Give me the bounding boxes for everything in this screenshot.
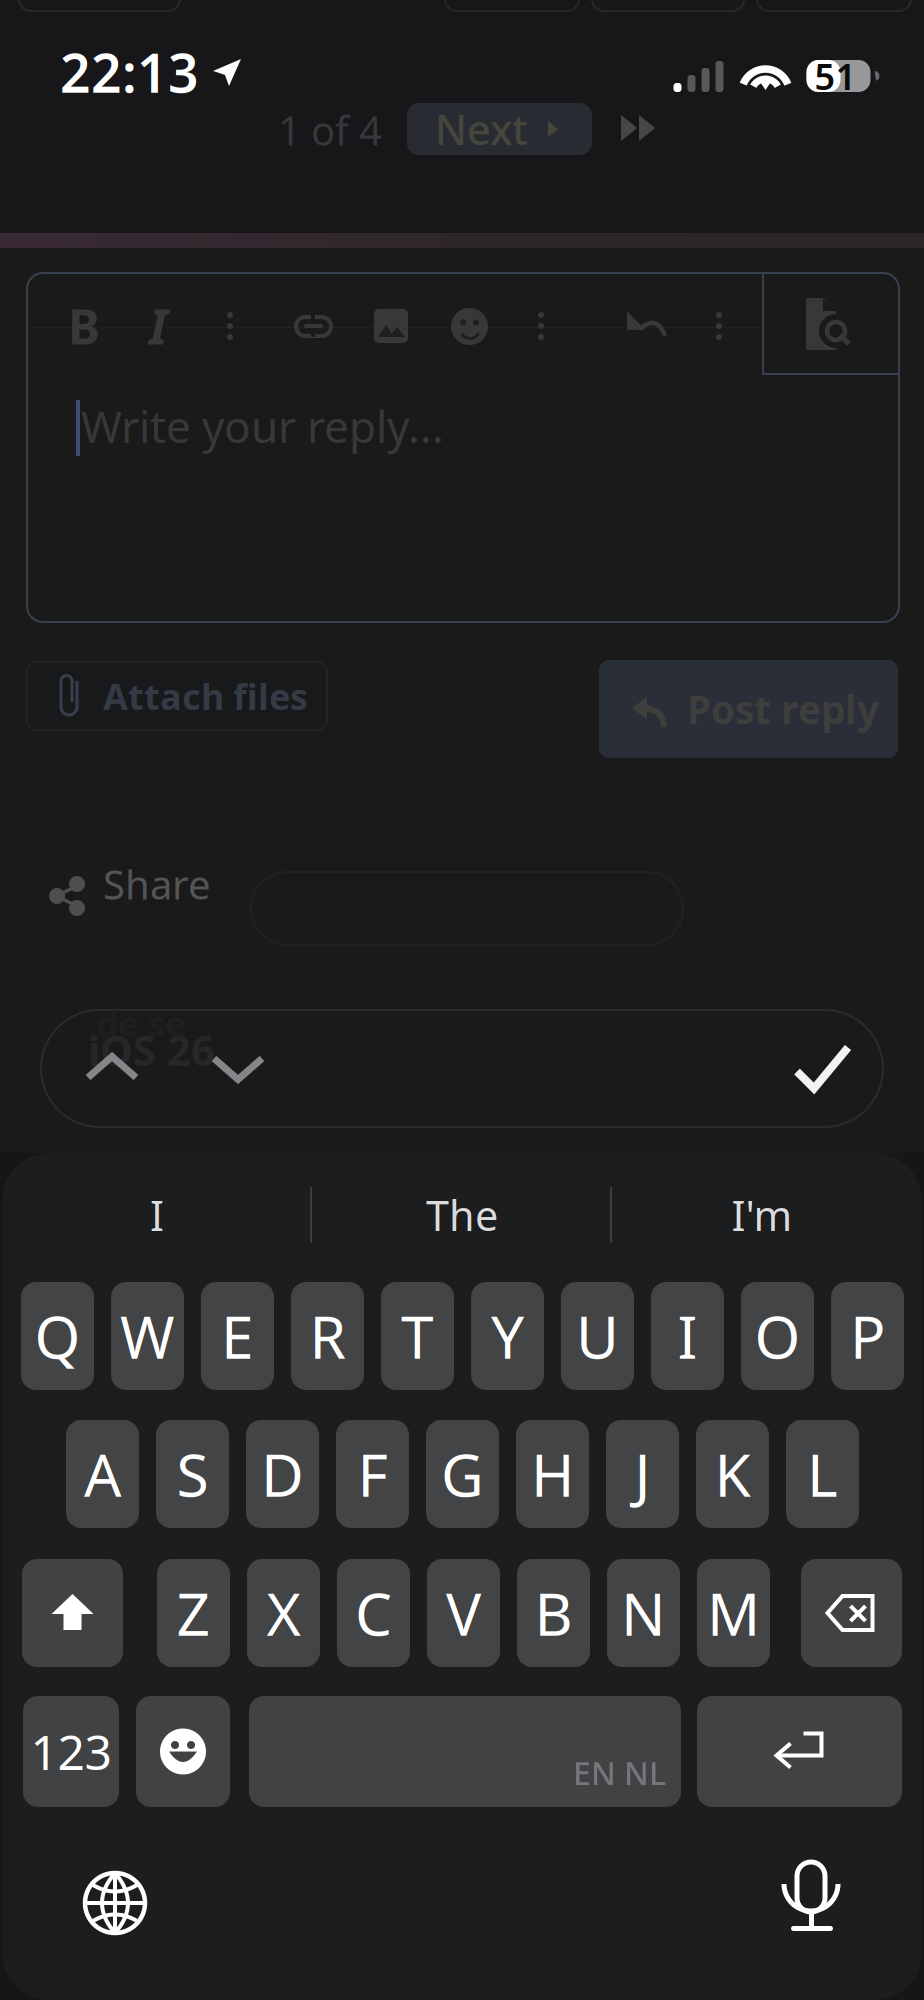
staticText: C xyxy=(355,1574,392,1652)
staticText: B xyxy=(68,294,100,358)
staticText: L xyxy=(807,1435,838,1513)
button[interactable]: R xyxy=(291,1282,364,1390)
button[interactable]: Next field xyxy=(183,1011,293,1126)
button[interactable]: Z xyxy=(157,1559,230,1667)
button[interactable]: Previous field xyxy=(57,1011,167,1126)
staticText: Attach files xyxy=(103,672,308,720)
button[interactable]: space xyxy=(249,1696,681,1807)
staticText: Next xyxy=(435,102,528,156)
button[interactable]: P xyxy=(831,1282,904,1390)
button[interactable]: E xyxy=(201,1282,274,1390)
staticText: V xyxy=(446,1574,481,1652)
button[interactable]: Return xyxy=(697,1696,902,1807)
button[interactable]: Dictation xyxy=(779,1862,843,1936)
button[interactable]: V xyxy=(427,1559,500,1667)
button[interactable]: Done xyxy=(768,1011,878,1126)
staticText: J xyxy=(634,1435,650,1513)
staticText: G xyxy=(441,1435,484,1513)
staticText: Q xyxy=(34,1297,80,1375)
staticText: EN NL xyxy=(573,1751,666,1794)
staticText: 1 of 4 xyxy=(278,103,382,156)
button[interactable]: Shift xyxy=(22,1559,123,1667)
button[interactable]: Delete xyxy=(801,1559,902,1667)
staticText: D xyxy=(261,1435,304,1513)
button[interactable]: Share xyxy=(47,856,267,912)
staticText: K xyxy=(714,1435,750,1513)
staticText: 51 xyxy=(814,52,856,100)
button[interactable]: X xyxy=(247,1559,320,1667)
staticText: The xyxy=(426,1188,498,1242)
button[interactable]: Emoji xyxy=(136,1696,230,1807)
button[interactable]: S xyxy=(156,1420,229,1528)
staticText: S xyxy=(176,1435,208,1513)
staticText: 22:13 xyxy=(60,37,199,107)
button[interactable]: Q xyxy=(21,1282,94,1390)
staticText: I'm xyxy=(731,1188,792,1242)
staticText: W xyxy=(120,1297,175,1375)
button[interactable]: Attach files xyxy=(27,662,327,730)
button[interactable]: Next keyboard xyxy=(77,1865,149,1937)
button[interactable]: G xyxy=(426,1420,499,1528)
staticText: Write your reply... xyxy=(81,397,444,455)
button[interactable]: O xyxy=(741,1282,814,1390)
staticText: iOS 26 xyxy=(88,1023,215,1077)
button[interactable]: 123 xyxy=(23,1696,119,1807)
button[interactable]: L xyxy=(786,1420,859,1528)
staticText: Y xyxy=(491,1297,524,1375)
button[interactable]: W xyxy=(111,1282,184,1390)
staticText: F xyxy=(357,1435,387,1513)
staticText: T xyxy=(401,1297,434,1375)
button[interactable]: K xyxy=(696,1420,769,1528)
staticText: R xyxy=(309,1297,345,1375)
staticText: I xyxy=(150,1188,164,1242)
staticText: A xyxy=(84,1435,121,1513)
staticText: P xyxy=(850,1297,885,1375)
staticText: Z xyxy=(176,1574,210,1652)
button[interactable]: C xyxy=(337,1559,410,1667)
staticText: I xyxy=(677,1297,697,1375)
staticText: 123 xyxy=(30,1720,111,1783)
staticText: N xyxy=(621,1574,666,1652)
button[interactable]: I xyxy=(651,1282,724,1390)
button[interactable]: J xyxy=(606,1420,679,1528)
staticText: H xyxy=(531,1435,574,1513)
button[interactable]: Next xyxy=(407,103,592,155)
staticText: de se xyxy=(96,1000,186,1046)
staticText: B xyxy=(534,1574,572,1652)
staticText: E xyxy=(221,1297,254,1375)
staticText: Post reply xyxy=(687,683,879,735)
staticText: I xyxy=(149,294,167,358)
staticText: U xyxy=(576,1297,619,1375)
staticText: O xyxy=(754,1297,800,1375)
button[interactable]: Y xyxy=(471,1282,544,1390)
button[interactable]: Preview xyxy=(762,273,899,374)
button[interactable]: Post reply xyxy=(599,660,898,758)
button[interactable]: D xyxy=(246,1420,319,1528)
button[interactable]: A xyxy=(66,1420,139,1528)
staticText: X xyxy=(266,1574,300,1652)
button[interactable]: B xyxy=(517,1559,590,1667)
button[interactable]: H xyxy=(516,1420,589,1528)
button[interactable]: M xyxy=(697,1559,770,1667)
button[interactable]: F xyxy=(336,1420,409,1528)
button[interactable]: N xyxy=(607,1559,680,1667)
button[interactable]: T xyxy=(381,1282,454,1390)
button[interactable]: U xyxy=(561,1282,634,1390)
staticText: Share xyxy=(103,857,211,910)
staticText: M xyxy=(707,1574,760,1652)
